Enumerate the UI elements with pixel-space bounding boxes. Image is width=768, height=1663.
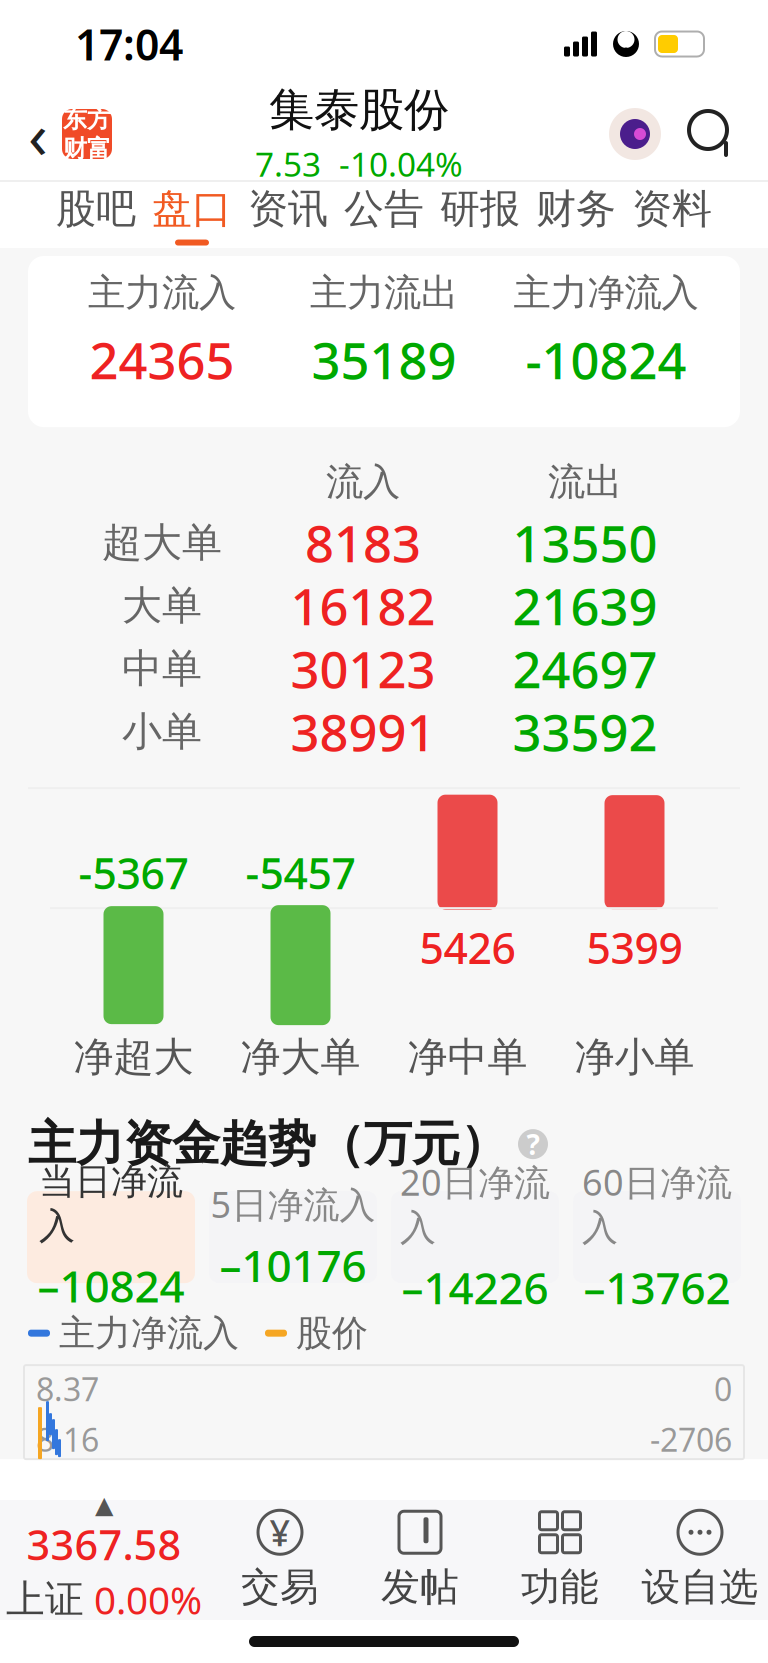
button[interactable]: Search <box>664 104 742 164</box>
button[interactable]: 设自选 <box>630 1505 768 1615</box>
staticText: 24697 <box>512 635 657 702</box>
button[interactable]: Back <box>14 104 62 164</box>
staticText: -5367 <box>78 844 188 901</box>
staticText: 资料 <box>632 184 712 233</box>
staticText: 21639 <box>512 572 657 639</box>
staticText: 财富 <box>63 134 111 163</box>
staticText: 股吧 <box>56 184 136 233</box>
staticText: 5日净流入 <box>210 1180 375 1228</box>
staticText: 盘口 <box>152 184 232 233</box>
button[interactable]: 功能 <box>490 1505 630 1615</box>
staticText: 17:04 <box>75 16 183 72</box>
staticText: -5457 <box>245 844 355 901</box>
staticText: 上证 <box>6 1576 84 1623</box>
button[interactable]: 5日净流入 <box>209 1191 377 1283</box>
staticText: 大单 <box>122 581 202 630</box>
staticText: 5399 <box>586 919 682 976</box>
button[interactable]: 60日净流入 <box>573 1191 741 1283</box>
button[interactable]: 盘口 <box>144 184 240 246</box>
staticText: 7.53 -10.04% <box>255 142 463 186</box>
staticText: –10824 <box>37 1256 184 1314</box>
staticText: 主力净流入 <box>513 270 698 316</box>
staticText: 超大单 <box>102 518 222 567</box>
staticText: 流入 <box>326 459 400 505</box>
staticText: 16182 <box>290 572 435 639</box>
staticText: –10176 <box>219 1236 366 1294</box>
staticText: ▲ <box>95 1491 113 1518</box>
staticText: 公告 <box>344 184 424 233</box>
staticText: 研报 <box>440 184 520 233</box>
staticText: 5426 <box>419 919 515 976</box>
staticText: 8183 <box>305 509 421 576</box>
button[interactable]: 财务 <box>528 184 624 246</box>
button[interactable]: 资讯 <box>240 184 336 246</box>
staticText: –13762 <box>583 1258 730 1316</box>
staticText: 股价 <box>296 1311 368 1355</box>
staticText: ? <box>526 1125 539 1163</box>
button[interactable]: East Money home <box>62 109 112 159</box>
staticText: 0.00% <box>94 1574 202 1625</box>
staticText: 35189 <box>311 326 456 393</box>
staticText: 8.16 <box>36 1418 99 1461</box>
staticText: 中单 <box>122 644 202 693</box>
staticText: 小单 <box>122 707 202 756</box>
button[interactable]: 20日净流入 <box>391 1191 559 1283</box>
staticText: 功能 <box>521 1563 599 1611</box>
staticText: 主力流出 <box>310 270 458 316</box>
staticText: 集泰股份 <box>269 82 449 138</box>
staticText: 3367.58 <box>26 1517 181 1572</box>
staticText: 设自选 <box>641 1563 758 1611</box>
staticText: -10824 <box>525 326 686 393</box>
staticText: 60日净流入 <box>582 1158 732 1250</box>
staticText: –14226 <box>401 1258 548 1316</box>
staticText: 24365 <box>89 326 234 393</box>
staticText: ‹ <box>28 91 48 176</box>
staticText: 主力资金趋势（万元） <box>28 1115 508 1174</box>
staticText: ¥ <box>269 1508 290 1556</box>
staticText: 0 <box>714 1368 732 1410</box>
button[interactable]: 交易 <box>210 1505 350 1615</box>
staticText: 发帖 <box>381 1563 459 1611</box>
button[interactable]: 资料 <box>624 184 720 246</box>
staticText: -2706 <box>650 1418 732 1461</box>
staticText: 30123 <box>290 635 435 702</box>
staticText: 33592 <box>512 698 657 765</box>
button[interactable]: Shanghai index <box>0 1502 210 1618</box>
button[interactable]: 公告 <box>336 184 432 246</box>
staticText: 主力流入 <box>88 270 236 316</box>
button[interactable]: 股吧 <box>48 184 144 246</box>
button[interactable]: 当日净流入 <box>27 1191 195 1283</box>
staticText: 东方 <box>63 104 111 134</box>
staticText: 13550 <box>512 509 657 576</box>
staticText: 流出 <box>548 459 622 505</box>
button[interactable]: AI assistant <box>606 105 664 163</box>
button[interactable]: 发帖 <box>350 1505 490 1615</box>
staticText: 净中单 <box>407 1033 527 1082</box>
staticText: 主力净流入 <box>59 1311 239 1355</box>
staticText: 净小单 <box>574 1033 694 1082</box>
staticText: 交易 <box>241 1563 319 1611</box>
staticText: 净超大 <box>73 1033 193 1082</box>
button[interactable]: 研报 <box>432 184 528 246</box>
staticText: 20日净流入 <box>400 1158 550 1250</box>
staticText: 8.37 <box>36 1368 99 1410</box>
staticText: 当日净流入 <box>39 1160 183 1248</box>
staticText: 38991 <box>290 698 435 765</box>
staticText: 资讯 <box>248 184 328 233</box>
staticText: 净大单 <box>240 1033 360 1082</box>
staticText: 财务 <box>536 184 616 233</box>
